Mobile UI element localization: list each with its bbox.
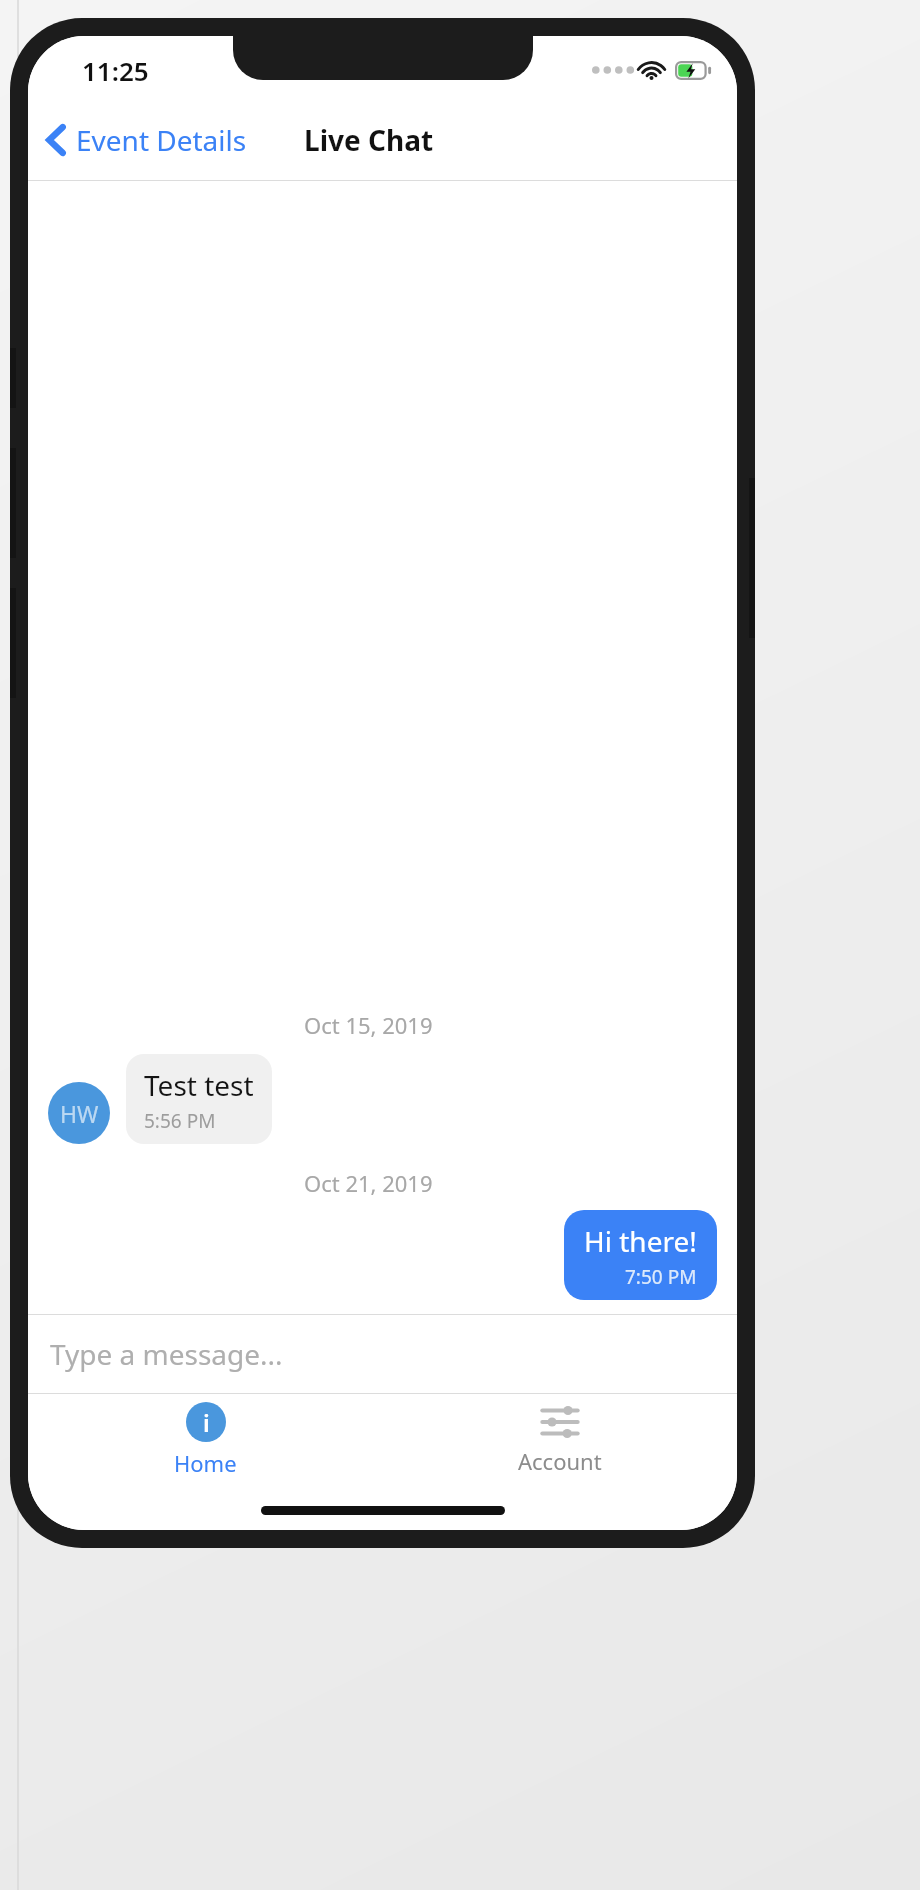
staticText: Home [174,1448,237,1478]
staticText: Test test [144,1066,254,1104]
staticText: Event Details [76,121,247,159]
staticText: Account [518,1446,602,1476]
staticText: Hi there! [584,1222,697,1260]
staticText: 11:25 [82,53,149,88]
button[interactable]: Event Details [28,113,259,167]
staticText: Live Chat [304,121,434,159]
button[interactable]: Account settings [382,1394,737,1486]
staticText: i [203,1406,210,1439]
button[interactable]: Type a message... [28,1315,737,1393]
button[interactable]: HW [28,1054,737,1144]
staticText: 5:56 PM [144,1108,216,1134]
staticText: Type a message... [50,1335,283,1373]
staticText: Oct 21, 2019 [304,1168,433,1198]
staticText: Oct 15, 2019 [304,1010,433,1040]
button[interactable]: i [28,1394,382,1486]
staticText: 7:50 PM [625,1264,697,1290]
staticText: HW [60,1098,99,1129]
other: Account settings [540,1404,580,1440]
button[interactable]: Hi there! [28,1210,737,1300]
